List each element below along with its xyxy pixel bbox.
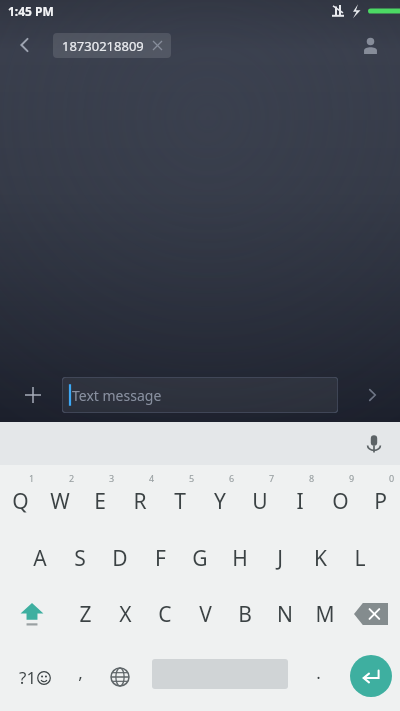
button[interactable]: Shift bbox=[6, 594, 58, 634]
staticText: O bbox=[332, 487, 349, 516]
button[interactable]: B bbox=[225, 596, 265, 632]
staticText: J bbox=[277, 544, 283, 573]
button[interactable]: Q bbox=[0, 483, 40, 519]
button[interactable]: Text message bbox=[62, 377, 338, 413]
button[interactable]: L bbox=[340, 540, 380, 576]
button[interactable]: H bbox=[220, 540, 260, 576]
staticText: Text message bbox=[72, 386, 162, 405]
staticText: N bbox=[277, 600, 293, 629]
staticText: C bbox=[158, 600, 172, 629]
button[interactable]: U bbox=[240, 483, 280, 519]
button[interactable]: W bbox=[40, 483, 80, 519]
staticText: B bbox=[238, 600, 252, 629]
button[interactable]: Attach bbox=[18, 380, 48, 410]
staticText: 2 bbox=[69, 472, 75, 484]
staticText: 0 bbox=[389, 472, 395, 484]
staticText: V bbox=[199, 600, 212, 629]
button[interactable]: Y bbox=[200, 483, 240, 519]
staticText: M bbox=[315, 600, 335, 629]
button[interactable]: E bbox=[80, 483, 120, 519]
button[interactable]: Contacts bbox=[354, 29, 386, 61]
button[interactable]: Voice input bbox=[356, 426, 392, 462]
staticText: U bbox=[252, 487, 268, 516]
button[interactable]: S bbox=[60, 540, 100, 576]
staticText: 18730218809 bbox=[62, 37, 144, 55]
staticText: K bbox=[314, 544, 327, 573]
staticText: 4 bbox=[149, 472, 155, 484]
button[interactable]: X bbox=[105, 596, 145, 632]
button[interactable]: Backspace bbox=[346, 594, 396, 634]
staticText: T bbox=[174, 487, 186, 516]
staticText: . bbox=[316, 661, 321, 684]
staticText: 3 bbox=[109, 472, 115, 484]
button[interactable]: . bbox=[298, 654, 338, 690]
button[interactable]: Send bbox=[356, 379, 388, 411]
button[interactable]: D bbox=[100, 540, 140, 576]
button[interactable]: T bbox=[160, 483, 200, 519]
button[interactable]: N bbox=[265, 596, 305, 632]
button[interactable]: Z bbox=[65, 596, 105, 632]
staticText: R bbox=[133, 487, 147, 516]
staticText: E bbox=[94, 487, 106, 516]
staticText: S bbox=[74, 544, 86, 573]
staticText: P bbox=[374, 487, 387, 516]
staticText: G bbox=[192, 544, 208, 573]
button[interactable]: R bbox=[120, 483, 160, 519]
staticText: ?1 bbox=[19, 666, 37, 689]
staticText: L bbox=[354, 544, 366, 573]
staticText: I bbox=[296, 487, 304, 516]
button[interactable]: M bbox=[305, 596, 345, 632]
button[interactable]: Back bbox=[8, 28, 42, 62]
button[interactable]: G bbox=[180, 540, 220, 576]
staticText: 9 bbox=[349, 472, 355, 484]
staticText: , bbox=[78, 661, 83, 684]
button[interactable]: Change language bbox=[100, 656, 140, 698]
staticText: Y bbox=[214, 487, 226, 516]
staticText: 7 bbox=[269, 472, 275, 484]
staticText: Z bbox=[79, 600, 92, 629]
staticText: X bbox=[119, 600, 132, 629]
button[interactable]: Enter bbox=[350, 655, 392, 697]
button[interactable]: A bbox=[20, 540, 60, 576]
staticText: A bbox=[33, 544, 47, 573]
staticText: 1 bbox=[29, 472, 35, 484]
button[interactable]: P bbox=[360, 483, 400, 519]
button[interactable]: I bbox=[280, 483, 320, 519]
button[interactable]: K bbox=[300, 540, 340, 576]
button[interactable]: Symbols bbox=[4, 656, 66, 698]
staticText: H bbox=[232, 544, 248, 573]
staticText: 8 bbox=[309, 472, 315, 484]
staticText: Q bbox=[12, 487, 29, 516]
button[interactable]: 18730218809 bbox=[53, 33, 171, 58]
button[interactable]: F bbox=[140, 540, 180, 576]
staticText: 1:45 PM bbox=[8, 3, 54, 19]
staticText: F bbox=[155, 544, 166, 573]
staticText: 5 bbox=[189, 472, 195, 484]
staticText: 6 bbox=[229, 472, 235, 484]
button[interactable]: C bbox=[145, 596, 185, 632]
button[interactable]: J bbox=[260, 540, 300, 576]
staticText: W bbox=[50, 487, 70, 516]
button[interactable]: , bbox=[60, 654, 100, 690]
button[interactable]: O bbox=[320, 483, 360, 519]
button[interactable]: V bbox=[185, 596, 225, 632]
staticText: D bbox=[112, 544, 128, 573]
